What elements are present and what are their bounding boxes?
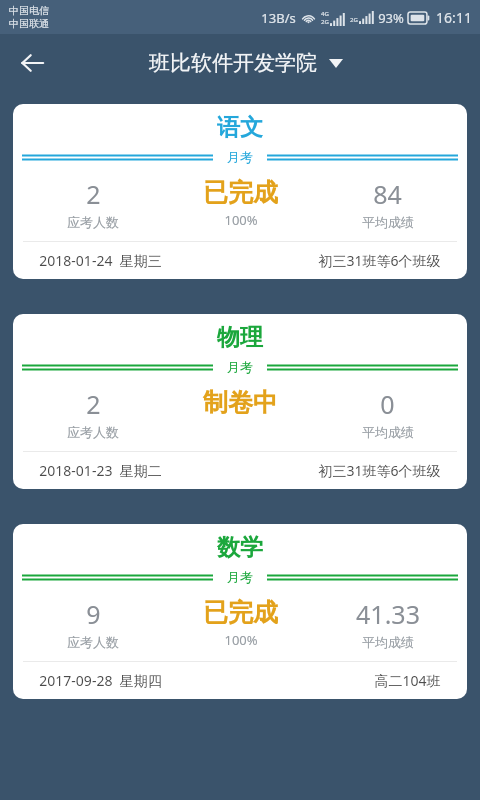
staticText: 已完成: [203, 597, 278, 628]
staticText: 物理: [217, 323, 263, 352]
staticText: 41.33: [356, 597, 420, 631]
staticText: 应考人数: [67, 424, 119, 440]
staticText: 2: [86, 387, 101, 421]
staticText: 2017-09-28 星期四: [39, 671, 162, 690]
staticText: 初三31班等6个班级: [318, 461, 441, 480]
staticText: 13B/s: [261, 9, 296, 27]
staticText: 0: [380, 387, 395, 421]
button[interactable]: 语文: [13, 104, 467, 279]
staticText: 平均成绩: [362, 424, 414, 440]
staticText: 应考人数: [67, 214, 119, 230]
staticText: 100%: [224, 211, 258, 229]
staticText: 平均成绩: [362, 634, 414, 650]
staticText: 数学: [217, 533, 263, 562]
staticText: 93%: [378, 9, 404, 27]
staticText: 2018-01-23 星期二: [39, 461, 162, 480]
staticText: 中国电信: [9, 4, 49, 17]
button[interactable]: Back: [8, 39, 56, 87]
staticText: 100%: [224, 631, 258, 649]
staticText: 9: [86, 597, 101, 631]
staticText: 2: [86, 177, 101, 211]
staticText: 已完成: [203, 177, 278, 208]
staticText: 班比软件开发学院: [149, 50, 317, 76]
staticText: 16:11: [436, 8, 472, 27]
staticText: 高二104班: [374, 671, 441, 690]
staticText: 84: [373, 177, 402, 211]
staticText: 初三31班等6个班级: [318, 251, 441, 270]
staticText: 平均成绩: [362, 214, 414, 230]
staticText: 4G: [321, 10, 329, 18]
staticText: 制卷中: [203, 387, 278, 418]
button[interactable]: 物理: [13, 314, 467, 489]
staticText: 2018-01-24 星期三: [39, 251, 162, 270]
staticText: 应考人数: [67, 634, 119, 650]
staticText: 月考: [227, 149, 253, 165]
staticText: 中国联通: [9, 17, 49, 30]
staticText: 2G: [321, 18, 329, 26]
staticText: 月考: [227, 569, 253, 585]
staticText: 2G: [350, 16, 358, 24]
button[interactable]: 班比软件开发学院: [149, 50, 343, 76]
staticText: 语文: [217, 113, 263, 142]
button[interactable]: 数学: [13, 524, 467, 699]
staticText: 月考: [227, 359, 253, 375]
